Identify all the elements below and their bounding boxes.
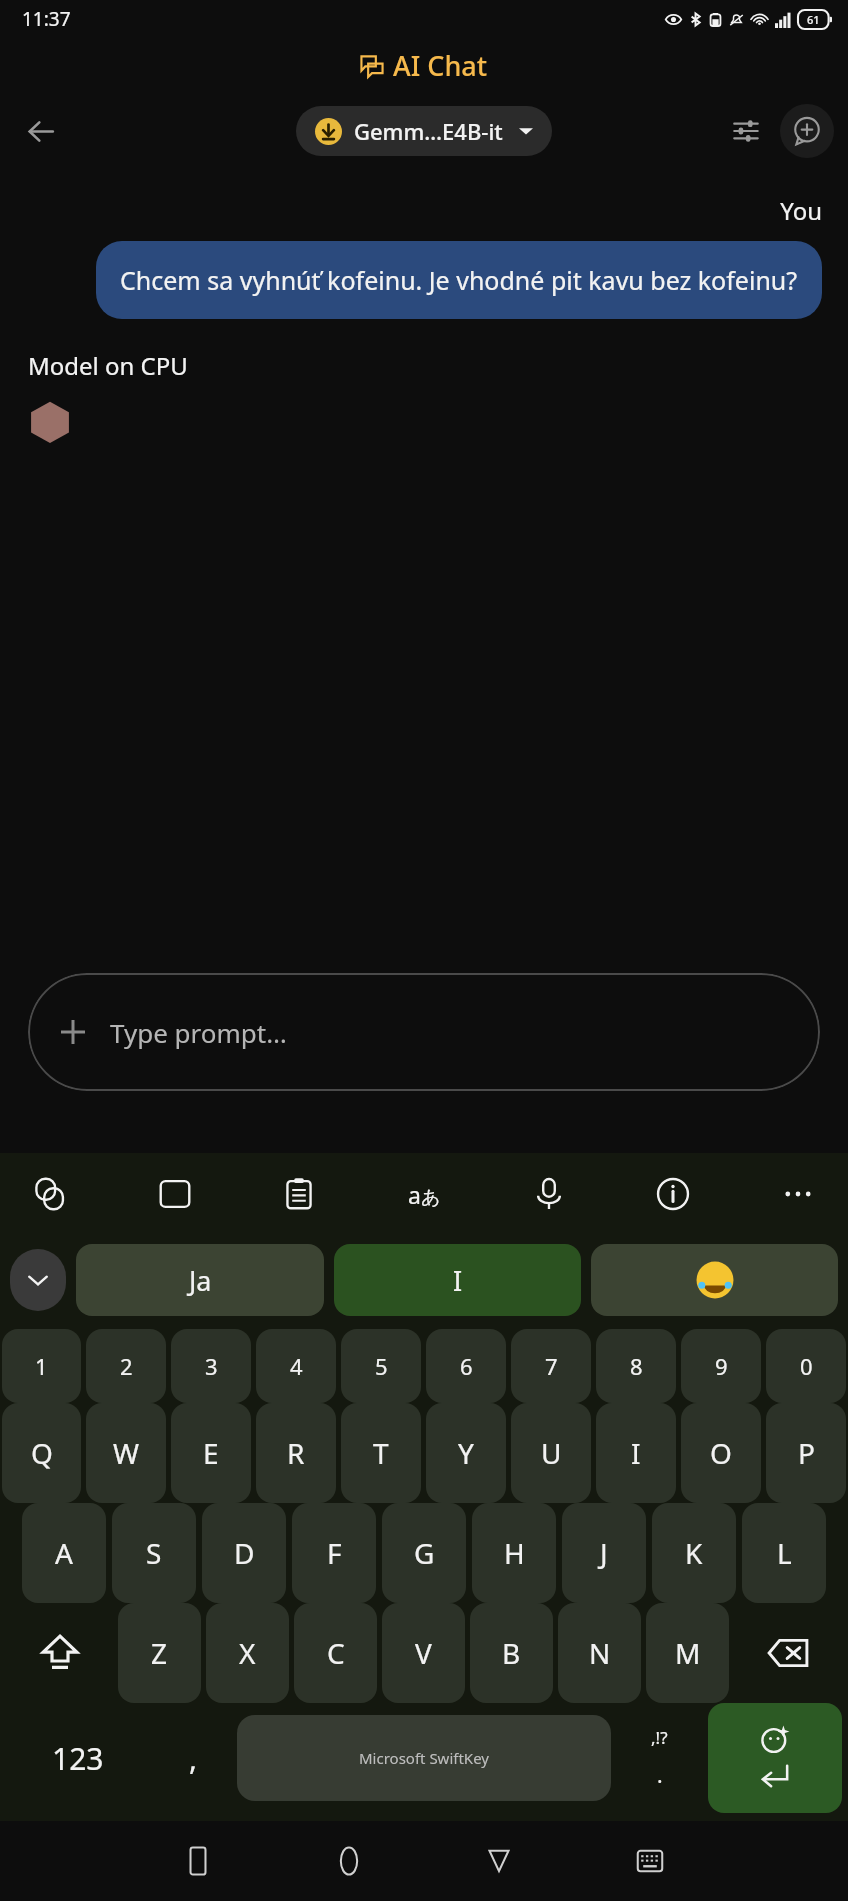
staticText: Z	[151, 1634, 168, 1672]
button[interactable]: Voice input	[521, 1166, 577, 1222]
button[interactable]: 5	[341, 1329, 421, 1403]
button[interactable]: Ja	[76, 1244, 324, 1316]
staticText: W	[113, 1434, 140, 1472]
button[interactable]: T	[341, 1403, 421, 1503]
button[interactable]: S	[112, 1503, 196, 1603]
staticText: G	[414, 1534, 435, 1572]
staticText: Microsoft SwiftKey	[359, 1748, 489, 1768]
button[interactable]: W	[86, 1403, 166, 1503]
button[interactable]: 4	[256, 1329, 336, 1403]
staticText: 6	[460, 1351, 473, 1381]
staticText: 0	[800, 1351, 813, 1381]
button[interactable]: H	[472, 1503, 556, 1603]
staticText: F	[327, 1534, 342, 1572]
button[interactable]: G	[382, 1503, 466, 1603]
button[interactable]: D	[202, 1503, 286, 1603]
button[interactable]: X	[206, 1603, 289, 1703]
button[interactable]: Q	[2, 1403, 81, 1503]
button[interactable]: Enter	[708, 1703, 842, 1813]
button[interactable]: Stickers	[22, 1166, 78, 1222]
button[interactable]: N	[558, 1603, 641, 1703]
staticText: ,	[189, 1738, 198, 1779]
button[interactable]: Backspace	[734, 1603, 842, 1703]
button[interactable]: C	[294, 1603, 377, 1703]
staticText: D	[234, 1534, 255, 1572]
staticText: .	[657, 1761, 663, 1790]
button[interactable]: I	[334, 1244, 581, 1316]
button[interactable]: Info	[645, 1166, 701, 1222]
button[interactable]: Type prompt…	[28, 973, 820, 1091]
button[interactable]: New chat	[780, 104, 834, 158]
staticText: 11:37	[22, 6, 71, 32]
staticText: Chcem sa vyhnúť kofeinu. Je vhodné pit k…	[120, 263, 798, 297]
staticText: U	[541, 1434, 562, 1472]
button[interactable]: Back	[464, 1826, 534, 1896]
button[interactable]: 3	[171, 1329, 251, 1403]
button[interactable]: Back	[14, 104, 68, 158]
button[interactable]	[591, 1244, 838, 1316]
button[interactable]: J	[562, 1503, 646, 1603]
staticText: B	[502, 1634, 521, 1672]
button[interactable]: 2	[86, 1329, 166, 1403]
button[interactable]: P	[766, 1403, 846, 1503]
staticText: N	[589, 1634, 611, 1672]
staticText: Y	[458, 1434, 474, 1472]
staticText: I	[453, 1262, 463, 1299]
button[interactable]: A	[22, 1503, 106, 1603]
staticText: R	[287, 1434, 305, 1472]
button[interactable]: E	[171, 1403, 251, 1503]
button[interactable]: V	[382, 1603, 465, 1703]
button[interactable]: 6	[426, 1329, 506, 1403]
button[interactable]: F	[292, 1503, 376, 1603]
button[interactable]: U	[511, 1403, 591, 1503]
staticText: J	[600, 1534, 608, 1572]
button[interactable]: 9	[681, 1329, 761, 1403]
button[interactable]: Y	[426, 1403, 506, 1503]
button[interactable]: 123	[6, 1703, 149, 1813]
staticText: ,!?	[651, 1726, 668, 1749]
button[interactable]: Expand suggestions	[10, 1249, 66, 1311]
staticText: 1	[35, 1351, 48, 1381]
staticText: Ja	[189, 1262, 212, 1299]
button[interactable]: Home	[314, 1826, 384, 1896]
staticText: M	[675, 1634, 701, 1672]
staticText: S	[146, 1534, 162, 1572]
button[interactable]: M	[646, 1603, 729, 1703]
button[interactable]: R	[256, 1403, 336, 1503]
button[interactable]: K	[652, 1503, 736, 1603]
staticText: Type prompt…	[110, 1015, 287, 1050]
staticText: C	[327, 1634, 345, 1672]
button[interactable]: Clipboard	[271, 1166, 327, 1222]
button[interactable]: B	[470, 1603, 553, 1703]
button[interactable]: O	[681, 1403, 761, 1503]
button[interactable]: 7	[511, 1329, 591, 1403]
staticText: 3	[205, 1351, 218, 1381]
button[interactable]: Gemm…E4B-it	[296, 106, 552, 156]
button[interactable]: Settings	[720, 105, 772, 157]
button[interactable]: Chcem sa vyhnúť kofeinu. Je vhodné pit k…	[96, 241, 822, 319]
button[interactable]: More	[770, 1166, 826, 1222]
button[interactable]: ,	[153, 1703, 233, 1813]
staticText: 7	[545, 1351, 558, 1381]
button[interactable]: 0	[766, 1329, 846, 1403]
button[interactable]: L	[742, 1503, 826, 1603]
button[interactable]: Z	[118, 1603, 201, 1703]
staticText: 2	[120, 1351, 133, 1381]
button[interactable]: 1	[2, 1329, 81, 1403]
button[interactable]: GIF	[147, 1166, 203, 1222]
button[interactable]: Translate	[396, 1166, 452, 1222]
button[interactable]: Keyboard	[615, 1826, 685, 1896]
staticText: A	[55, 1534, 73, 1572]
staticText: 4	[290, 1351, 303, 1381]
button[interactable]: Recents	[163, 1826, 233, 1896]
staticText: 5	[375, 1351, 388, 1381]
staticText: O	[710, 1434, 732, 1472]
button[interactable]: 8	[596, 1329, 676, 1403]
staticText: 8	[630, 1351, 643, 1381]
staticText: Model on CPU	[28, 349, 188, 382]
button[interactable]: Shift	[6, 1603, 113, 1703]
staticText: E	[203, 1434, 219, 1472]
button[interactable]: Microsoft SwiftKey	[237, 1715, 611, 1801]
button[interactable]: I	[596, 1403, 676, 1503]
button[interactable]: ,!?	[615, 1703, 704, 1813]
